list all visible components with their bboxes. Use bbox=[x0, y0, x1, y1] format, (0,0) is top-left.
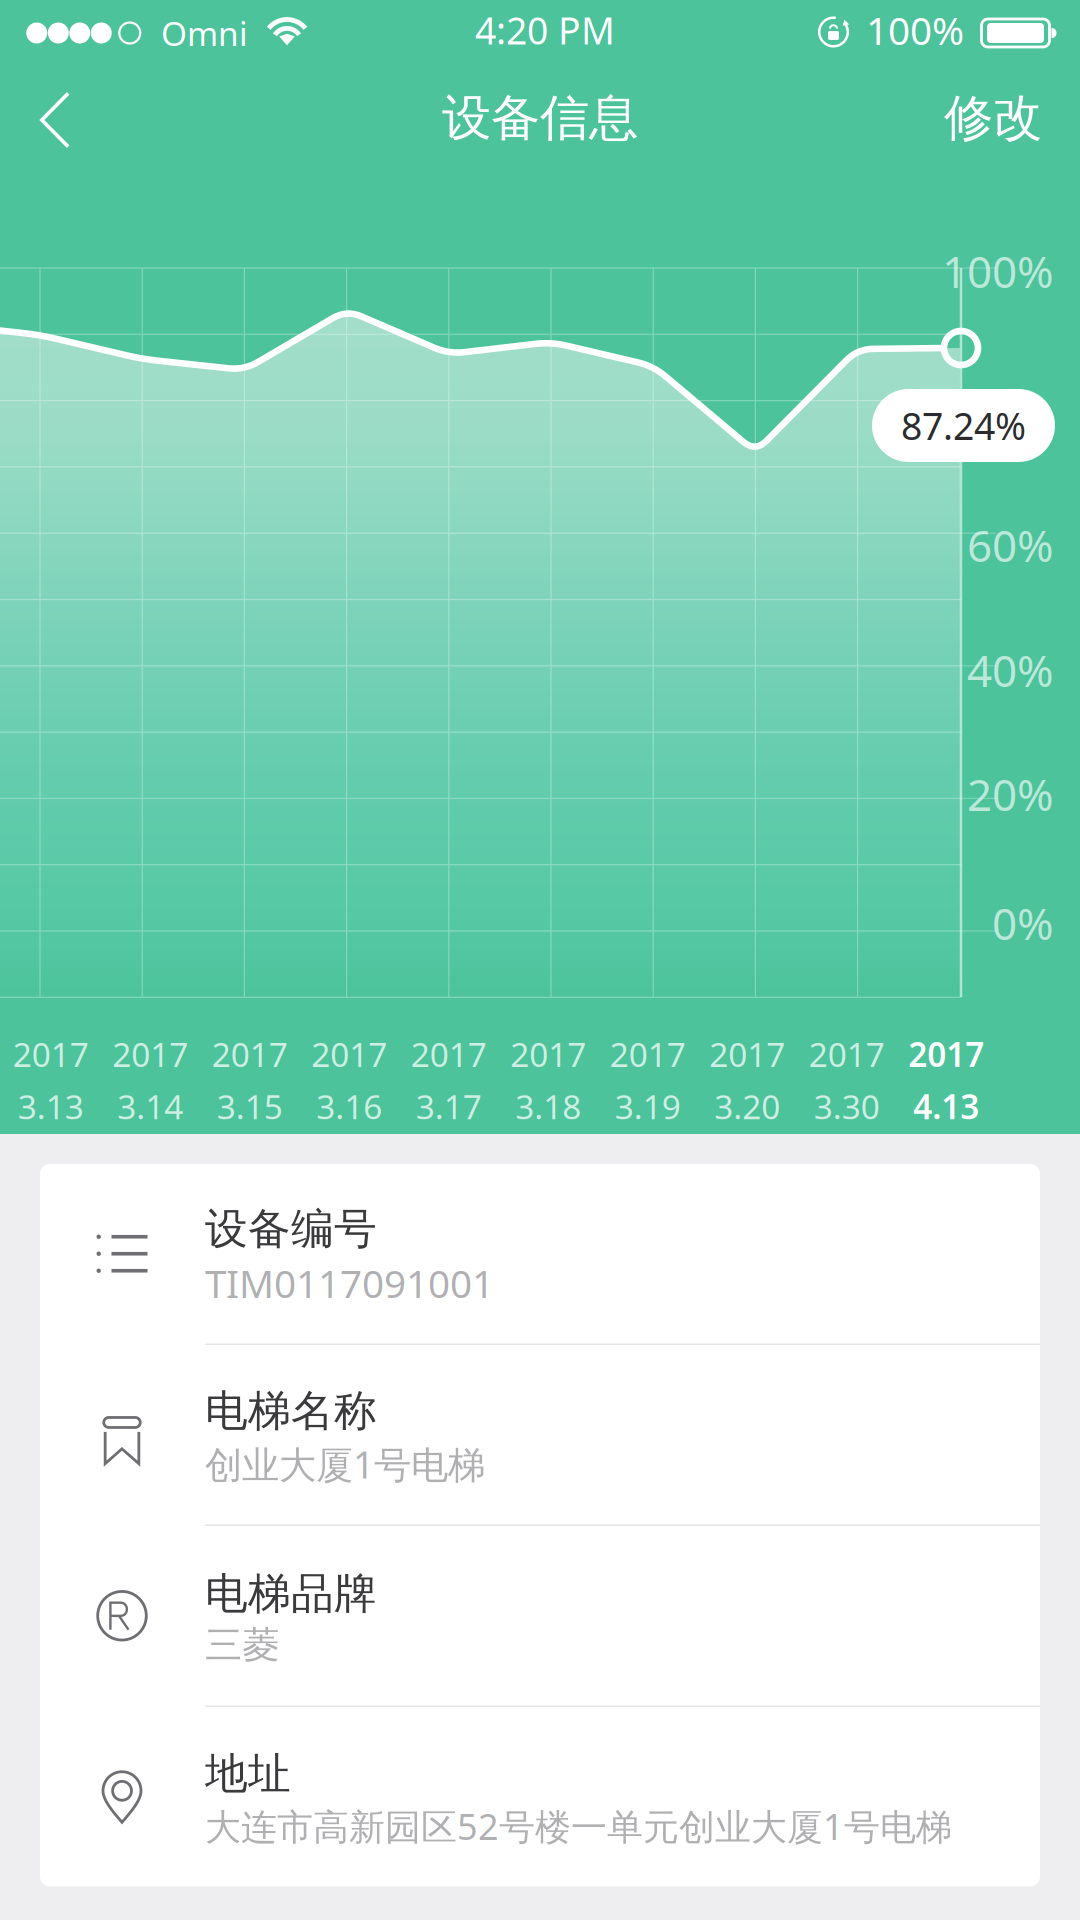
staticText: 3.19 bbox=[615, 1084, 681, 1129]
staticText: 2017 bbox=[311, 1032, 387, 1076]
staticText: 3.16 bbox=[316, 1084, 382, 1129]
staticText: 2017 bbox=[112, 1032, 188, 1076]
staticText: 4.13 bbox=[913, 1084, 979, 1129]
staticText: 0% bbox=[992, 894, 1054, 952]
button[interactable]: 修改 bbox=[914, 73, 1080, 157]
staticText: 大连市高新园区52号楼一单元创业大厦1号电梯 bbox=[205, 1802, 952, 1850]
staticText: 3.18 bbox=[515, 1084, 581, 1129]
staticText: 60% bbox=[967, 516, 1054, 574]
button[interactable]: 地址 bbox=[40, 1707, 1040, 1886]
button[interactable]: Back bbox=[0, 74, 100, 155]
staticText: 3.15 bbox=[217, 1084, 283, 1129]
staticText: 设备信息 bbox=[442, 88, 638, 148]
staticText: 40% bbox=[967, 641, 1054, 699]
staticText: 2017 bbox=[13, 1032, 89, 1076]
staticText: 2017 bbox=[610, 1032, 686, 1076]
staticText: 3.20 bbox=[714, 1084, 780, 1129]
staticText: 4:20 PM bbox=[475, 5, 615, 55]
button[interactable]: 电梯品牌 bbox=[40, 1526, 1040, 1707]
staticText: 3.17 bbox=[416, 1084, 482, 1129]
staticText: TIM0117091001 bbox=[205, 1257, 494, 1309]
staticText: 电梯名称 bbox=[205, 1385, 377, 1437]
staticText: 2017 bbox=[212, 1032, 288, 1076]
button[interactable]: 设备编号 bbox=[40, 1164, 1040, 1345]
staticText: 2017 bbox=[809, 1032, 885, 1076]
staticText: 三菱 bbox=[205, 1622, 279, 1668]
staticText: 2017 bbox=[709, 1032, 785, 1076]
staticText: 2017 bbox=[908, 1032, 984, 1076]
staticText: 20% bbox=[967, 765, 1054, 823]
staticText: 3.14 bbox=[117, 1084, 183, 1129]
staticText: 100% bbox=[942, 242, 1054, 300]
staticText: 2017 bbox=[510, 1032, 586, 1076]
staticText: Omni bbox=[161, 11, 248, 55]
button[interactable]: 电梯名称 bbox=[40, 1345, 1040, 1526]
staticText: 100% bbox=[866, 4, 964, 56]
staticText: 修改 bbox=[944, 88, 1042, 148]
staticText: 创业大厦1号电梯 bbox=[205, 1439, 485, 1489]
staticText: 2017 bbox=[411, 1032, 487, 1076]
staticText: 电梯品牌 bbox=[205, 1568, 377, 1620]
staticText: 地址 bbox=[205, 1748, 291, 1800]
staticText: 设备编号 bbox=[205, 1203, 377, 1255]
staticText: 3.13 bbox=[18, 1084, 84, 1129]
staticText: 87.24% bbox=[901, 401, 1026, 450]
staticText: 3.30 bbox=[814, 1084, 880, 1129]
